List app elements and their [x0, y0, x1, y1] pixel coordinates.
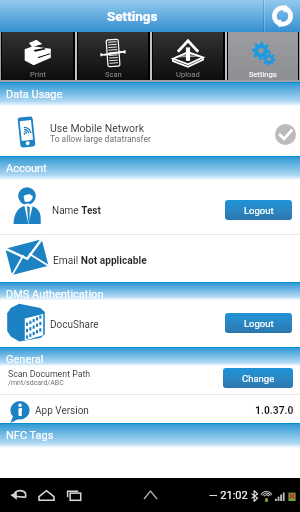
button[interactable]: Name Test [0, 180, 300, 234]
staticText: Settings [107, 8, 158, 24]
staticText: Upload [176, 70, 200, 79]
staticText: — 21:02 [209, 489, 248, 502]
button[interactable]: Change [223, 368, 293, 388]
button[interactable]: Back [4, 481, 32, 509]
staticText: To allow large datatransfer [50, 134, 151, 144]
button[interactable]: Scan Document Path [0, 366, 300, 394]
staticText: Use Mobile Network [50, 122, 144, 134]
staticText: DMS Authentication [6, 288, 104, 300]
button[interactable]: Logout [225, 313, 292, 333]
staticText: Logout [244, 205, 274, 216]
staticText: Email Not applicable [53, 255, 147, 267]
button[interactable]: Recent apps [60, 481, 88, 509]
button[interactable]: Email Not applicable [0, 235, 300, 282]
staticText: Change [242, 373, 275, 384]
staticText: Print [30, 70, 46, 79]
staticText: App Version [35, 405, 89, 417]
button[interactable]: Logout [225, 200, 292, 220]
button[interactable]: Scan [78, 32, 148, 80]
button[interactable]: Refresh [264, 0, 300, 32]
button[interactable]: Use Mobile Network [0, 106, 300, 156]
staticText: Account [6, 162, 47, 175]
staticText: Name Test [52, 205, 101, 217]
button[interactable]: Settings [228, 32, 298, 80]
staticText: Data Usage [6, 88, 63, 101]
button[interactable]: Show hidden icons [139, 484, 161, 506]
staticText: DocuShare [50, 319, 99, 331]
staticText: NFC Tags [6, 429, 54, 442]
staticText: General [6, 353, 44, 366]
staticText: Settings [249, 70, 277, 79]
staticText: Logout [244, 318, 274, 329]
button[interactable]: Print [2, 32, 73, 80]
button[interactable]: App Version [0, 395, 300, 423]
staticText: Scan [105, 70, 122, 79]
button[interactable]: Upload [153, 32, 223, 80]
staticText: 1.0.37.0 [255, 404, 294, 416]
staticText: /mnt/sdcard/ABC [8, 379, 64, 387]
button[interactable]: Home [32, 481, 60, 509]
button[interactable]: DocuShare [0, 300, 300, 347]
staticText: Scan Document Path [8, 369, 91, 379]
